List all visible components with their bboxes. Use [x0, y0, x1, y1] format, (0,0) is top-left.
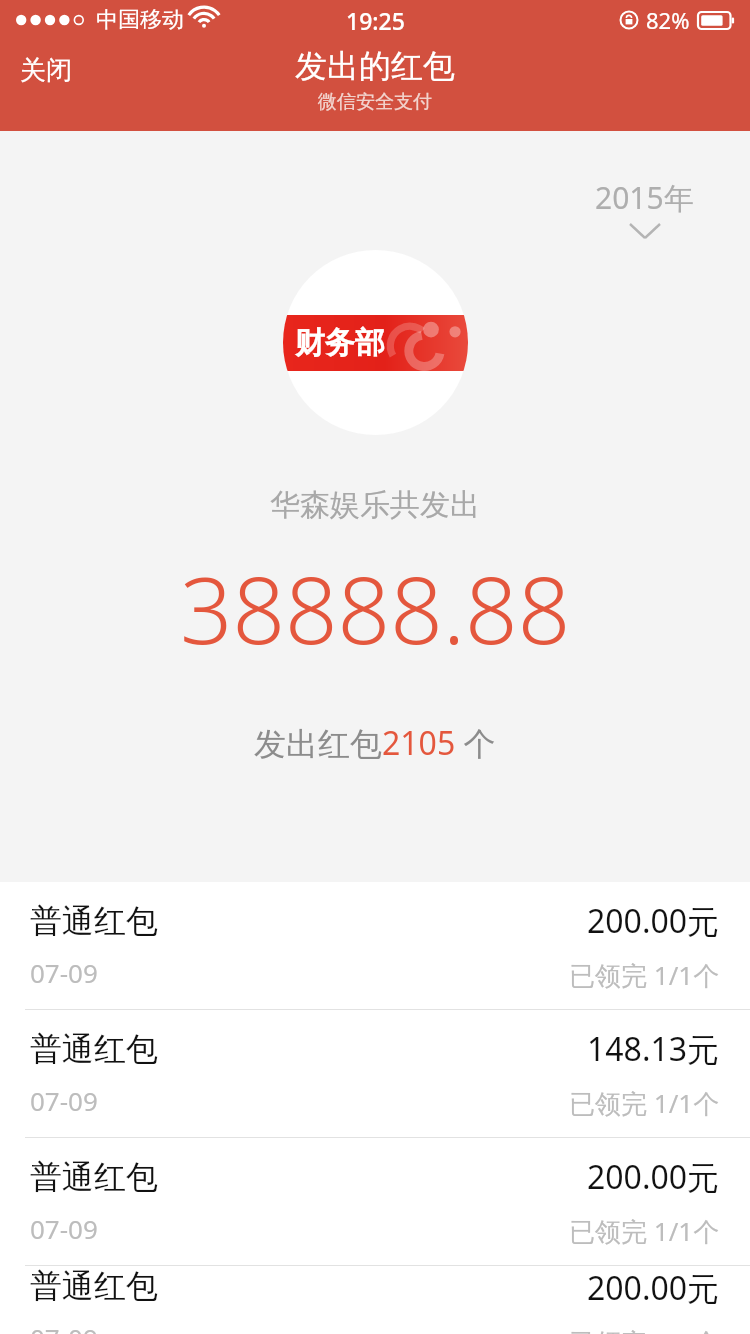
staticText: 07-09	[30, 1320, 98, 1334]
staticText: 财务部	[295, 324, 385, 362]
staticText: 微信安全支付	[318, 90, 432, 114]
staticText: 已领完 1/1个	[569, 1085, 720, 1121]
staticText: 200.00元	[587, 899, 720, 943]
staticText: 中国移动	[96, 6, 184, 34]
staticText: 已领完 1/1个	[569, 957, 720, 993]
staticText: 07-09	[30, 1083, 98, 1118]
button[interactable]: 关闭	[8, 48, 84, 93]
staticText: 普通红包	[30, 901, 158, 941]
button[interactable]: 普通红包	[0, 882, 750, 1010]
button[interactable]: 普通红包	[0, 1138, 750, 1266]
staticText: 普通红包	[30, 1029, 158, 1069]
staticText: 82%	[646, 5, 690, 35]
staticText: 2015年	[595, 177, 694, 218]
staticText: 普通红包	[30, 1266, 158, 1306]
staticText: 148.13元	[587, 1027, 720, 1071]
staticText: 华森娱乐共发出	[270, 486, 480, 524]
staticText: 19:25	[346, 5, 405, 36]
button[interactable]: 2015年	[587, 173, 702, 242]
staticText: 发出红包2105 个	[254, 721, 496, 765]
staticText: 38888.88	[180, 546, 571, 671]
button[interactable]: 普通红包	[0, 1010, 750, 1138]
staticText: 已领完 1/1个	[569, 1213, 720, 1249]
staticText: 已领完 1/1个	[569, 1324, 720, 1334]
staticText: 关闭	[20, 54, 72, 87]
staticText: 07-09	[30, 1211, 98, 1246]
button[interactable]: 普通红包	[0, 1266, 750, 1334]
staticText: 200.00元	[587, 1155, 720, 1199]
staticText: 07-09	[30, 955, 98, 990]
staticText: 普通红包	[30, 1157, 158, 1197]
staticText: 200.00元	[587, 1266, 720, 1310]
staticText: 发出的红包	[295, 46, 455, 86]
